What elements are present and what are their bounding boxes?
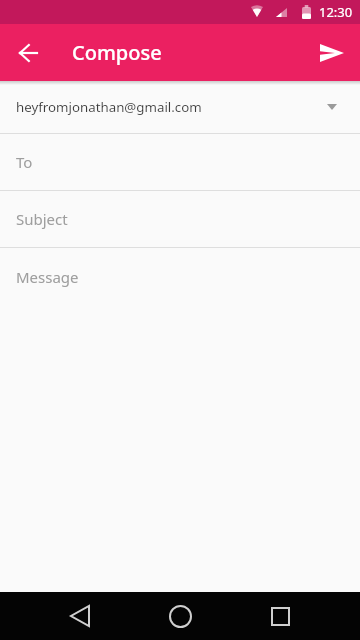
staticText: Message bbox=[16, 267, 79, 287]
button[interactable] bbox=[130, 592, 230, 640]
staticText: Compose bbox=[72, 39, 162, 66]
button[interactable]: Message bbox=[0, 248, 360, 592]
button[interactable]: To bbox=[0, 134, 360, 190]
staticText: 12:30 bbox=[319, 3, 353, 21]
staticText: heyfromjonathan@gmail.com bbox=[16, 98, 202, 116]
button[interactable]: Subject bbox=[0, 191, 360, 247]
button[interactable] bbox=[230, 592, 330, 640]
button[interactable]: heyfromjonathan@gmail.com bbox=[0, 81, 360, 133]
button[interactable] bbox=[12, 37, 44, 69]
staticText: To bbox=[16, 152, 33, 172]
button[interactable] bbox=[30, 592, 130, 640]
staticText: Subject bbox=[16, 209, 68, 229]
button[interactable] bbox=[314, 35, 350, 71]
